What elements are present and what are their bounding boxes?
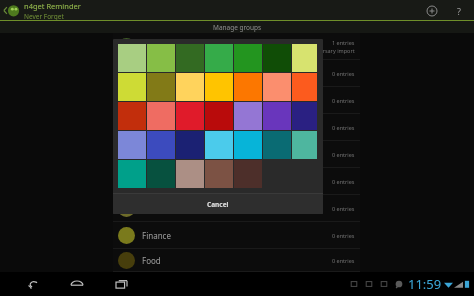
staticText: Manage groups bbox=[213, 23, 262, 32]
button[interactable]: Food bbox=[113, 249, 360, 272]
staticText: Contract bbox=[142, 149, 175, 160]
button[interactable]: Contract bbox=[113, 141, 360, 168]
button[interactable]: Birthday bbox=[113, 60, 360, 87]
staticText: Birthday bbox=[142, 68, 174, 79]
button[interactable]: Finance bbox=[113, 222, 360, 249]
button[interactable]: Back bbox=[22, 273, 44, 295]
button[interactable]: Help bbox=[450, 2, 468, 20]
button[interactable]: Add bbox=[422, 1, 442, 21]
button[interactable]: Cancel bbox=[113, 194, 323, 214]
button[interactable]: Feast bbox=[113, 195, 360, 222]
staticText: 1 entries bbox=[332, 39, 355, 46]
staticText: Food bbox=[142, 255, 161, 266]
staticText: ? bbox=[457, 5, 461, 17]
staticText: 0 entries bbox=[332, 257, 355, 264]
button[interactable]: Anniversary bbox=[113, 33, 360, 60]
button[interactable]: Recent apps bbox=[110, 273, 132, 295]
staticText: 0 entries bbox=[332, 151, 355, 158]
staticText: 0 entries bbox=[332, 97, 355, 104]
button[interactable]: Home bbox=[66, 273, 88, 295]
staticText: Business bbox=[142, 95, 176, 106]
staticText: 0 entries bbox=[332, 232, 355, 239]
staticText: 0 entries bbox=[332, 124, 355, 131]
staticText: Never Forget bbox=[24, 12, 64, 21]
staticText: n4get Reminder bbox=[24, 1, 81, 11]
staticText: Family bbox=[142, 176, 167, 187]
staticText: 0 entries bbox=[332, 205, 355, 212]
staticText: Car bbox=[142, 122, 155, 133]
staticText: Anniversary bbox=[142, 41, 187, 52]
staticText: Finance bbox=[142, 230, 171, 241]
staticText: Anniversary import bbox=[305, 47, 355, 54]
staticText: 0 entries bbox=[332, 178, 355, 185]
button[interactable]: Business bbox=[113, 87, 360, 114]
button[interactable]: Car bbox=[113, 114, 360, 141]
staticText: Cancel bbox=[207, 200, 229, 209]
staticText: 0 entries bbox=[332, 70, 355, 77]
button[interactable]: Family bbox=[113, 168, 360, 195]
staticText: 11:59 bbox=[408, 275, 442, 293]
button[interactable]: Manage groups bbox=[0, 21, 474, 33]
